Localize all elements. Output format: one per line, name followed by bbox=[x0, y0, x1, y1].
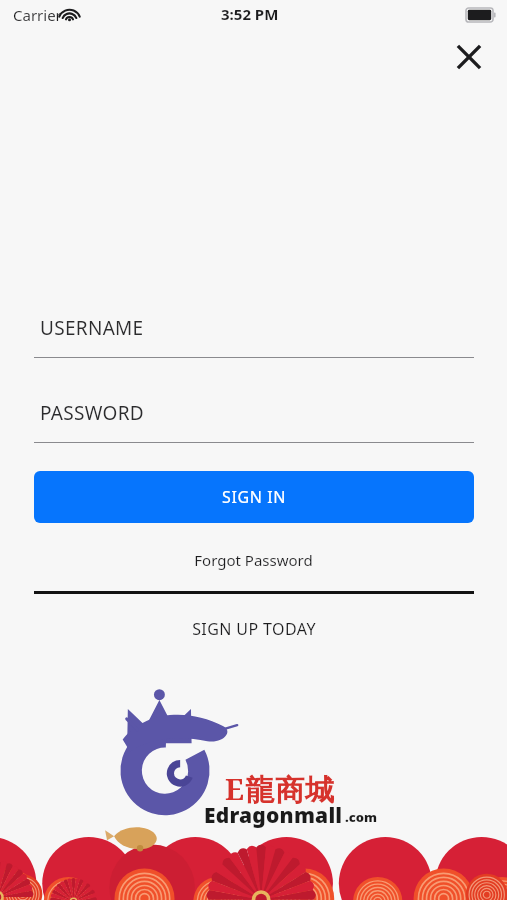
staticText: PASSWORD bbox=[40, 400, 144, 426]
button[interactable]: PASSWORD bbox=[34, 399, 474, 443]
button[interactable]: SIGN IN bbox=[34, 471, 474, 523]
staticText: 3:52 PM bbox=[221, 4, 279, 24]
staticText: SIGN IN bbox=[222, 486, 286, 508]
staticText: SIGN UP TODAY bbox=[192, 618, 316, 640]
staticText: E龍商城 bbox=[225, 769, 335, 809]
button[interactable]: Forgot Password bbox=[0, 541, 507, 579]
button[interactable]: Close bbox=[443, 31, 495, 83]
staticText: Carrier bbox=[13, 5, 62, 25]
staticText: .com bbox=[345, 808, 378, 826]
staticText: Edragonmall bbox=[204, 801, 343, 830]
button[interactable]: SIGN UP TODAY bbox=[0, 610, 507, 648]
staticText: USERNAME bbox=[40, 315, 144, 341]
button[interactable]: USERNAME bbox=[34, 314, 474, 358]
staticText: Forgot Password bbox=[194, 550, 313, 570]
